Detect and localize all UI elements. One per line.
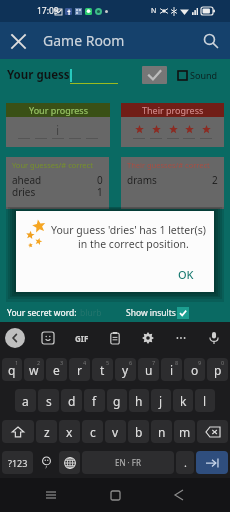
staticText: Your guess 'dries' has 1 letter(s)	[51, 223, 206, 237]
button[interactable]: r	[69, 358, 90, 381]
button[interactable]: f	[84, 389, 105, 412]
staticText: OK	[178, 267, 194, 282]
staticText: 2	[37, 359, 41, 366]
staticText: t	[100, 362, 105, 378]
staticText: n	[158, 424, 166, 440]
staticText: o	[191, 362, 199, 378]
button[interactable]: Back	[5, 328, 25, 348]
staticText: 0	[221, 359, 225, 366]
staticText: Sound	[190, 69, 218, 81]
staticText: d	[68, 393, 76, 409]
button[interactable]: v	[105, 420, 126, 443]
button[interactable]: h	[129, 389, 149, 412]
button[interactable]: .	[176, 451, 194, 474]
button[interactable]: Search	[196, 26, 226, 56]
button[interactable]: More options	[170, 327, 192, 349]
staticText: ?123	[8, 457, 28, 469]
button[interactable]: k	[173, 389, 193, 412]
staticText: Game Room	[43, 31, 125, 50]
staticText: i	[170, 362, 174, 378]
staticText: Your progress	[29, 104, 88, 116]
button[interactable]: d	[61, 389, 82, 412]
button[interactable]: Back	[166, 482, 192, 508]
button[interactable]: s	[38, 389, 59, 412]
staticText: 9	[198, 359, 202, 366]
staticText: N	[151, 6, 157, 16]
button[interactable]: b	[128, 420, 149, 443]
staticText: b	[135, 424, 143, 440]
staticText: Show insults	[126, 307, 176, 319]
button[interactable]: Recent apps	[38, 482, 64, 508]
button[interactable]: Settings	[137, 327, 159, 349]
button[interactable]: ?123	[2, 451, 33, 474]
button[interactable]: u	[138, 358, 159, 381]
staticText: j	[159, 393, 163, 409]
button[interactable]: Stickers	[37, 327, 59, 349]
button[interactable]: EN · FR	[82, 451, 174, 474]
button[interactable]: e	[46, 358, 67, 381]
staticText: .	[184, 455, 187, 470]
staticText: x	[66, 424, 73, 440]
staticText: a	[22, 393, 29, 409]
staticText: c	[90, 424, 96, 440]
button[interactable]: Close	[4, 27, 32, 55]
button[interactable]: c	[82, 420, 103, 443]
staticText: 1	[15, 359, 19, 366]
staticText: g	[113, 393, 121, 409]
staticText: 5	[106, 359, 110, 366]
button[interactable]: n	[151, 420, 172, 443]
staticText: l	[203, 393, 207, 409]
button[interactable]: i	[161, 358, 182, 381]
staticText: s	[46, 393, 52, 409]
button[interactable]: OK	[164, 264, 214, 292]
staticText: u	[145, 362, 153, 378]
button[interactable]: j	[151, 389, 171, 412]
staticText: p	[214, 362, 222, 378]
button[interactable]: Backspace	[197, 420, 228, 443]
button[interactable]: w	[24, 358, 44, 381]
staticText: m	[179, 424, 191, 440]
button[interactable]: x	[59, 420, 80, 443]
staticText: z	[44, 424, 50, 440]
staticText: Your guesses/# correct	[12, 160, 93, 170]
staticText: dries	[12, 185, 36, 197]
button[interactable]: Enter	[196, 451, 228, 474]
button[interactable]: m	[174, 420, 195, 443]
staticText: blurb	[80, 307, 102, 319]
button[interactable]: g	[107, 389, 127, 412]
button[interactable]: q	[2, 358, 22, 381]
staticText: 6	[129, 359, 133, 366]
button[interactable]: Voice input	[203, 327, 225, 349]
staticText: Their progress	[142, 104, 204, 116]
button[interactable]: Sound	[178, 69, 218, 81]
button[interactable]: GIF	[71, 327, 93, 349]
button[interactable]: Clipboard	[104, 327, 126, 349]
staticText: drams	[127, 173, 157, 185]
button[interactable]: z	[36, 420, 57, 443]
button[interactable]: Show insults	[126, 307, 189, 319]
staticText: 7	[152, 359, 156, 366]
staticText: 2	[212, 173, 218, 185]
button[interactable]: t	[92, 358, 113, 381]
button[interactable]: a	[15, 389, 36, 412]
staticText: EN · FR	[115, 457, 141, 468]
staticText: 0	[97, 173, 103, 185]
button[interactable]: Change language	[59, 451, 80, 474]
staticText: v	[112, 424, 119, 440]
button[interactable]: Shift	[2, 420, 34, 443]
staticText: 1	[97, 185, 103, 197]
button[interactable]: y	[115, 358, 136, 381]
button[interactable]: l	[195, 389, 215, 412]
button[interactable]: o	[184, 358, 205, 381]
staticText: Your secret word:	[7, 307, 77, 319]
button[interactable]: Submit guess	[142, 66, 167, 84]
staticText: w	[29, 362, 39, 378]
staticText: 17:09	[37, 5, 59, 17]
staticText: h	[135, 393, 143, 409]
button[interactable]: Emoji	[35, 451, 57, 474]
staticText: ahead	[12, 173, 42, 185]
staticText: in the correct position.	[78, 237, 189, 251]
button[interactable]: p	[207, 358, 228, 381]
staticText: i	[56, 122, 60, 138]
button[interactable]: Home	[102, 482, 128, 508]
